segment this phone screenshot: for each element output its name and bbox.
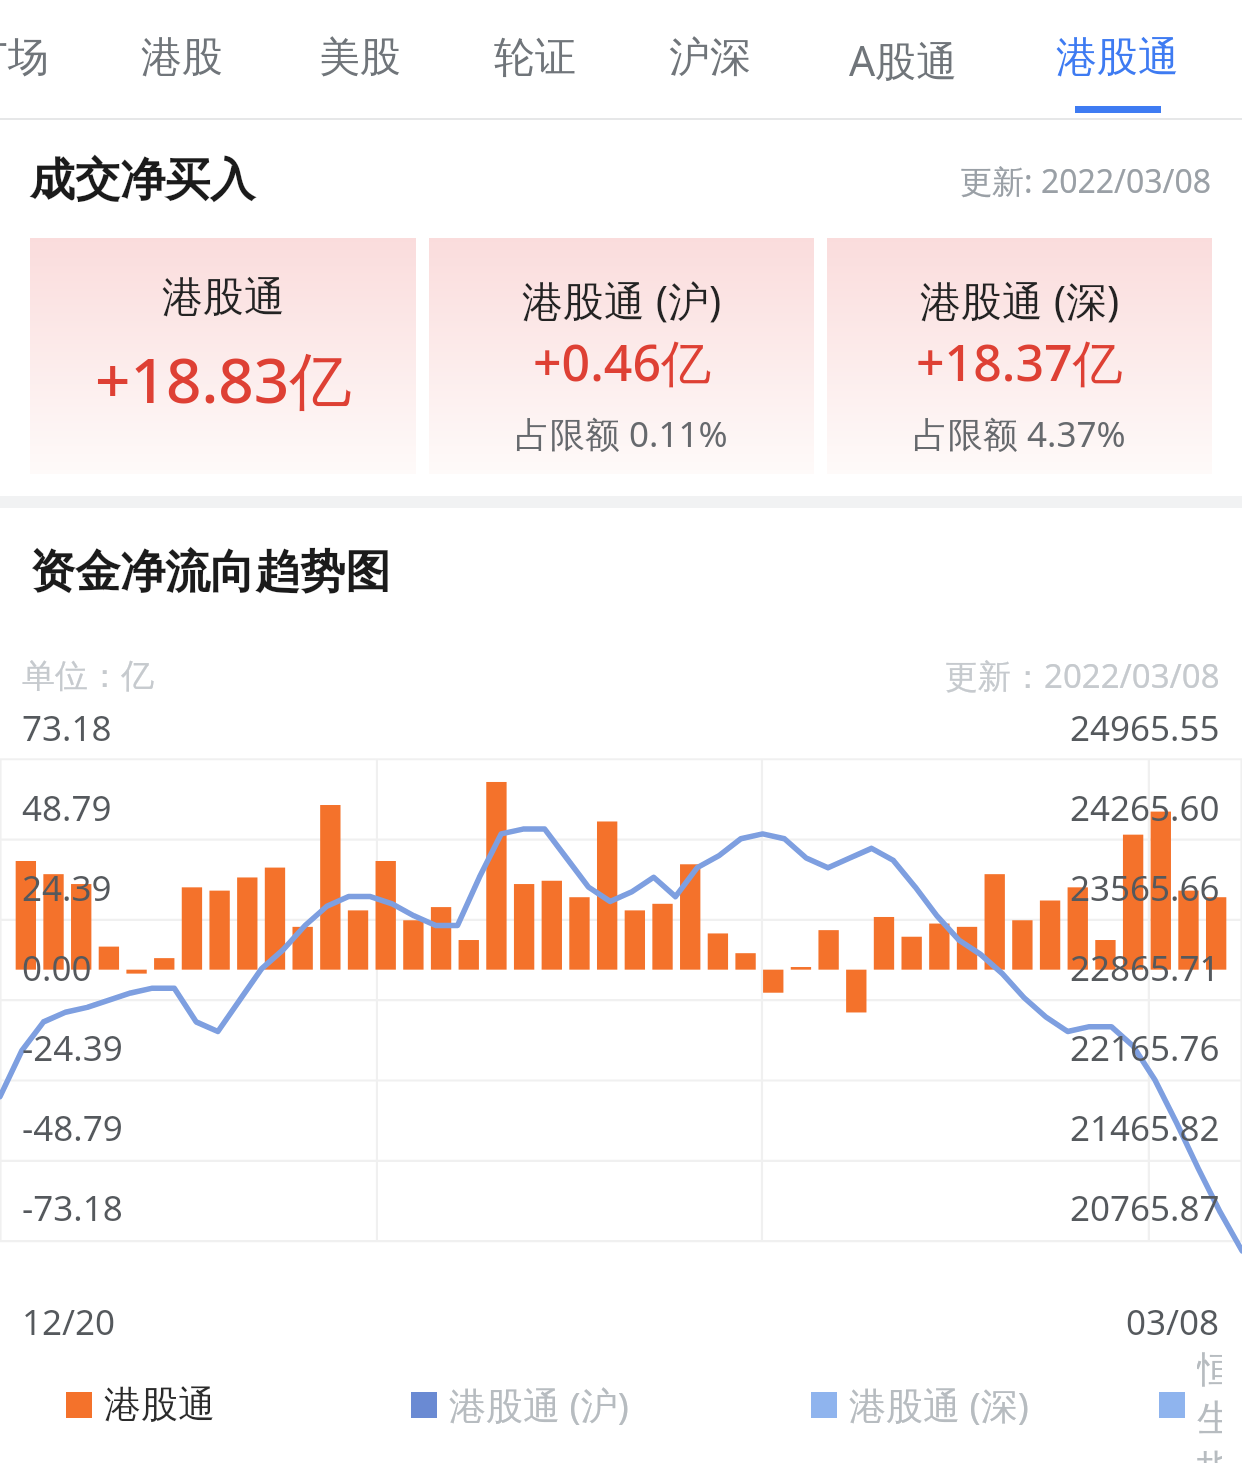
- staticText: 港股通: [104, 1381, 215, 1428]
- staticText: 港股通 (深): [920, 272, 1120, 328]
- staticText: 单位：亿: [22, 655, 154, 697]
- button[interactable]: A股通: [823, 0, 983, 120]
- staticText: 24.39: [22, 864, 112, 912]
- button[interactable]: 广场: [0, 0, 68, 120]
- button[interactable]: 港股通 (沪): [411, 1379, 629, 1430]
- staticText: 美股: [319, 32, 401, 84]
- button[interactable]: 港股通: [66, 1381, 215, 1428]
- staticText: 更新: 2022/03/08: [960, 159, 1212, 203]
- staticText: 港股通 (深): [849, 1379, 1029, 1430]
- staticText: 0.00: [22, 944, 92, 992]
- button[interactable]: 港股通 (沪): [429, 238, 814, 474]
- button[interactable]: 恒生指数: [1159, 1346, 1222, 1463]
- button[interactable]: 港股通: [1037, 0, 1197, 120]
- staticText: 22165.76: [1070, 1024, 1220, 1072]
- staticText: 22865.71: [1070, 944, 1220, 992]
- staticText: 沪深: [669, 32, 751, 84]
- button[interactable]: 轮证: [475, 0, 595, 120]
- staticText: -48.79: [22, 1104, 123, 1152]
- staticText: 73.18: [22, 704, 112, 752]
- staticText: 20765.87: [1070, 1184, 1220, 1232]
- staticText: 恒生指数: [1197, 1346, 1222, 1463]
- staticText: 港股通 (沪): [449, 1379, 629, 1430]
- staticText: 港股: [141, 32, 223, 84]
- staticText: +18.37亿: [916, 328, 1123, 396]
- staticText: 占限额 0.11%: [515, 410, 728, 458]
- staticText: 12/20: [22, 1298, 116, 1346]
- button[interactable]: 港股通: [30, 238, 416, 474]
- staticText: 港股通: [1056, 32, 1179, 84]
- staticText: -73.18: [22, 1184, 123, 1232]
- button[interactable]: 美股: [300, 0, 420, 120]
- staticText: 占限额 4.37%: [913, 410, 1126, 458]
- button[interactable]: 港股通 (深): [827, 238, 1212, 474]
- staticText: A股通: [849, 32, 958, 88]
- staticText: -24.39: [22, 1024, 123, 1072]
- staticText: 24265.60: [1070, 784, 1220, 832]
- button[interactable]: 港股通 (深): [811, 1379, 1029, 1430]
- staticText: 03/08: [1126, 1298, 1220, 1346]
- staticText: 23565.66: [1070, 864, 1220, 912]
- staticText: 成交净买入: [30, 152, 255, 209]
- staticText: +18.83亿: [95, 337, 352, 422]
- staticText: +0.46亿: [533, 328, 711, 396]
- staticText: 24965.55: [1070, 704, 1220, 752]
- staticText: 48.79: [22, 784, 112, 832]
- button[interactable]: 港股: [122, 0, 242, 120]
- staticText: 21465.82: [1070, 1104, 1220, 1152]
- staticText: 更新：2022/03/08: [945, 653, 1220, 698]
- staticText: 港股通 (沪): [522, 272, 722, 328]
- staticText: 资金净流向趋势图: [30, 544, 390, 601]
- staticText: 港股通: [162, 272, 285, 324]
- staticText: 轮证: [494, 32, 576, 84]
- staticText: 广场: [0, 32, 49, 84]
- button[interactable]: 沪深: [650, 0, 770, 120]
